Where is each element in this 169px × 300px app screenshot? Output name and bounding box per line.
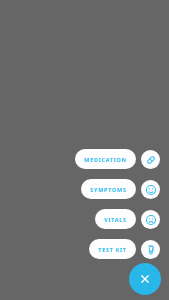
- button[interactable]: Log medication: [141, 150, 160, 169]
- button[interactable]: SYMPTOMS: [81, 179, 136, 199]
- button[interactable]: Log symptoms: [141, 180, 160, 199]
- button[interactable]: Log vitals: [141, 210, 160, 229]
- button[interactable]: Close menu: [129, 263, 161, 295]
- button[interactable]: [0, 0, 169, 300]
- button[interactable]: TEST KIT: [89, 239, 136, 259]
- staticText: MEDICATION: [84, 156, 127, 163]
- button[interactable]: MEDICATION: [75, 149, 136, 169]
- button[interactable]: Log test kit: [141, 240, 160, 259]
- staticText: SYMPTOMS: [90, 186, 127, 193]
- staticText: TEST KIT: [98, 246, 127, 253]
- button[interactable]: VITALS: [95, 209, 136, 229]
- staticText: VITALS: [104, 216, 127, 223]
